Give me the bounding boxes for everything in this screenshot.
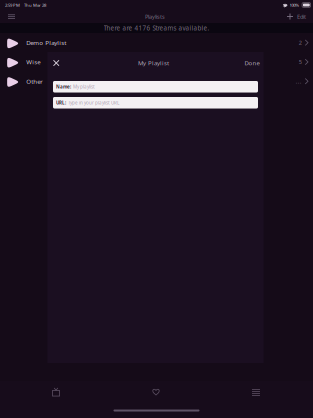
button[interactable]: Playlists [252, 381, 260, 403]
button[interactable]: Add playlist [284, 10, 296, 23]
staticText: Name: [56, 84, 71, 90]
staticText: 100% [290, 2, 300, 8]
staticText: My playlist [73, 84, 95, 90]
staticText: There are 4176 Streams available. [103, 24, 209, 32]
button[interactable]: Demo Playlist [0, 33, 313, 52]
staticText: 5 [299, 58, 302, 66]
staticText: ... [296, 77, 302, 85]
staticText: Wise [26, 58, 40, 66]
staticText: Demo Playlist [26, 38, 66, 47]
staticText: Thu Mar 28 [24, 2, 46, 8]
button[interactable]: Other [0, 72, 313, 91]
button[interactable]: Sidebar [0, 10, 26, 23]
button[interactable]: Edit [296, 10, 313, 23]
staticText: Type in your playlist URL [68, 100, 119, 106]
button[interactable]: Favorites [152, 381, 160, 403]
button[interactable]: Done [237, 53, 263, 73]
staticText: My Playlist [138, 59, 169, 67]
staticText: Other [26, 77, 43, 85]
staticText: Done [244, 59, 259, 67]
button[interactable]: Live TV [52, 381, 60, 403]
button[interactable]: Close [47, 53, 69, 73]
staticText: URL: [56, 100, 66, 106]
staticText: 2:59 PM [5, 2, 20, 8]
button[interactable]: Wise [0, 52, 313, 72]
staticText: 2 [299, 39, 302, 46]
staticText: Edit [297, 13, 306, 20]
staticText: Playlists [145, 13, 165, 20]
